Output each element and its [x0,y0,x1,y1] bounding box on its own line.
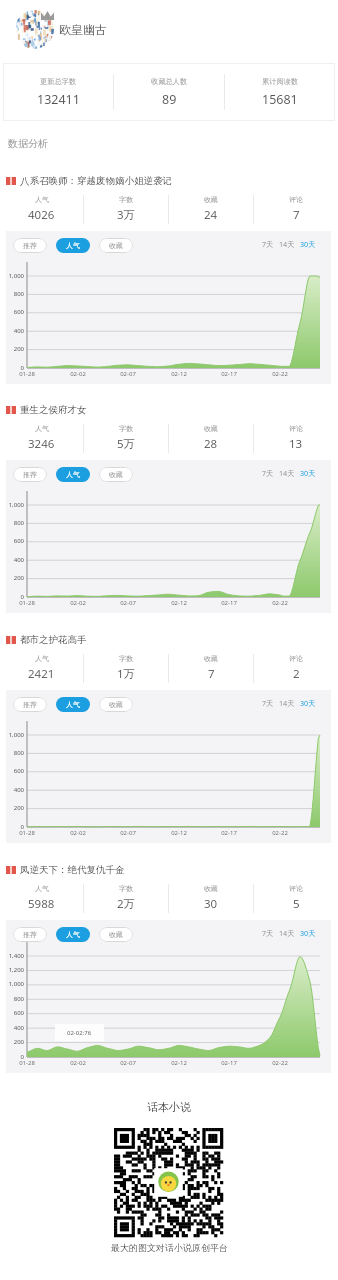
staticText: 02-07 [113,370,143,378]
button[interactable]: 字数 [84,651,168,685]
staticText: 人气 [35,195,49,204]
button[interactable]: 30天 [300,928,316,938]
button[interactable]: 字数 [84,192,168,226]
button[interactable]: 30天 [300,239,316,249]
staticText: 推荐 [23,930,37,939]
staticText: 更新总字数 [40,77,76,86]
button[interactable]: 收藏总人数 [114,63,224,121]
staticText: 凤逆天下：绝代复仇千金 [20,864,125,876]
staticText: 人气 [35,884,49,893]
staticText: 3246 [28,436,55,452]
button[interactable]: 人气 [56,697,90,712]
button[interactable]: 都市之护花高手 [6,634,87,646]
button[interactable]: 30天 [300,698,316,708]
staticText: 字数 [119,884,133,893]
staticText: 收藏 [204,884,218,893]
staticText: 1,000 [0,980,24,988]
staticText: 01-28 [12,1059,42,1067]
button[interactable]: 评论 [254,192,338,226]
button[interactable]: 人气 [0,421,83,455]
staticText: 推荐 [23,241,37,250]
staticText: 收藏 [204,424,218,433]
button[interactable]: 30天 [300,468,316,478]
button[interactable]: 推荐 [13,697,47,712]
staticText: 字数 [119,195,133,204]
button[interactable]: 收藏 [169,421,253,455]
staticText: 01-28 [12,829,42,837]
staticText: 收藏 [109,700,123,709]
staticText: 推荐 [23,700,37,709]
staticText: 02-17 [214,1059,244,1067]
staticText: 5988 [28,896,55,912]
button[interactable]: 欧皇幽古 [0,0,338,58]
button[interactable]: 收藏 [99,927,133,942]
staticText: 800 [0,749,24,757]
button[interactable]: 7天 [262,928,274,938]
button[interactable]: 收藏 [99,697,133,712]
button[interactable]: 人气 [56,467,90,482]
staticText: 400 [0,327,24,335]
button[interactable]: 14天 [279,928,295,938]
button[interactable]: 人气 [0,651,83,685]
button[interactable]: 推荐 [13,467,47,482]
button[interactable]: 重生之侯府才女 [6,404,87,416]
button[interactable]: 收藏 [99,467,133,482]
staticText: 200 [0,804,24,812]
button[interactable]: 收藏 [169,192,253,226]
button[interactable]: 14天 [279,468,295,478]
staticText: 都市之护花高手 [20,634,87,646]
button[interactable]: 评论 [254,651,338,685]
staticText: 5 [293,896,300,912]
staticText: 字数 [119,424,133,433]
staticText: 0 [0,823,24,831]
staticText: 02-02 [63,829,93,837]
staticText: 01-28 [12,599,42,607]
staticText: 收藏 [109,930,123,939]
staticText: 0 [0,593,24,601]
button[interactable]: 7天 [262,239,274,249]
button[interactable]: 更新总字数 [3,63,113,121]
button[interactable]: 累计阅读数 [225,63,335,121]
button[interactable]: 14天 [279,698,295,708]
staticText: 收藏 [109,470,123,479]
staticText: 02-17 [214,370,244,378]
staticText: 累计阅读数 [262,77,298,86]
staticText: 02-02 [63,370,93,378]
button[interactable]: 收藏 [169,651,253,685]
staticText: 30 [204,896,218,912]
staticText: 02-12 [164,370,194,378]
staticText: 800 [0,995,24,1003]
staticText: 人气 [66,470,80,479]
button[interactable]: 7天 [262,698,274,708]
button[interactable]: 凤逆天下：绝代复仇千金 [6,864,125,876]
button[interactable] [114,1128,223,1237]
button[interactable]: 推荐 [13,238,47,253]
staticText: 7 [293,207,300,223]
staticText: 02-02 [63,1059,93,1067]
button[interactable]: 人气 [56,927,90,942]
staticText: 400 [0,556,24,564]
button[interactable]: 7天 [262,468,274,478]
staticText: 2万 [117,896,136,912]
button[interactable]: 推荐 [13,927,47,942]
button[interactable]: 14天 [279,239,295,249]
staticText: 02-22 [265,370,295,378]
button[interactable]: 评论 [254,421,338,455]
button[interactable]: 人气 [0,192,83,226]
staticText: 600 [0,767,24,775]
staticText: 1万 [117,666,136,682]
button[interactable]: 评论 [254,881,338,915]
button[interactable]: 八系召唤师：穿越废物嫡小姐逆袭记 [6,175,172,187]
button[interactable]: 收藏 [99,238,133,253]
button[interactable]: 字数 [84,421,168,455]
staticText: 0 [0,1053,24,1061]
button[interactable]: 收藏 [169,881,253,915]
staticText: 推荐 [23,470,37,479]
staticText: 收藏 [109,241,123,250]
staticText: 1,000 [0,501,24,509]
button[interactable]: 人气 [56,238,90,253]
staticText: 02-17 [214,599,244,607]
button[interactable]: 人气 [0,881,83,915]
button[interactable]: 字数 [84,881,168,915]
staticText: 重生之侯府才女 [20,404,87,416]
